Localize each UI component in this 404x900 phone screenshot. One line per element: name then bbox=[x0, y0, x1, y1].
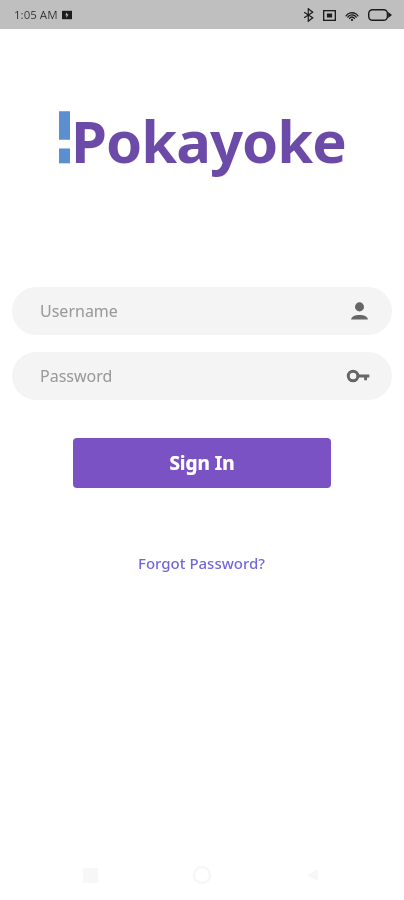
button[interactable]: Sign In bbox=[73, 438, 331, 488]
button[interactable]: Username bbox=[12, 287, 392, 335]
staticText: 1:05 AM bbox=[14, 7, 58, 23]
staticText: Username bbox=[40, 300, 118, 322]
staticText: Sign In bbox=[169, 450, 235, 476]
staticText: Pokayoke bbox=[71, 101, 346, 180]
staticText: Password bbox=[40, 365, 113, 387]
button[interactable]: Password bbox=[12, 352, 392, 400]
staticText: Forgot Password? bbox=[138, 553, 266, 573]
button[interactable]: Forgot Password? bbox=[128, 548, 276, 578]
other: Password bbox=[348, 368, 370, 384]
other: Username bbox=[349, 301, 370, 322]
